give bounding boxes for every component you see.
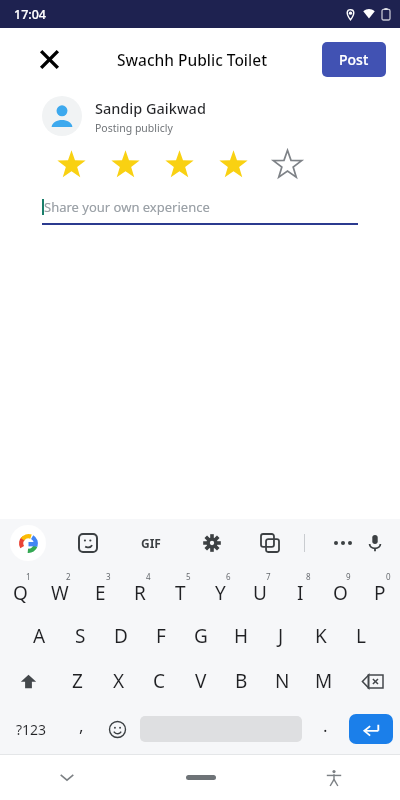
button[interactable]: X — [98, 658, 139, 704]
button[interactable]: Stickers — [72, 527, 104, 559]
button[interactable]: Translate — [254, 527, 286, 559]
staticText: G — [194, 623, 208, 649]
button[interactable]: Period — [308, 704, 342, 754]
button[interactable]: Google — [10, 525, 46, 561]
button[interactable]: Hide keyboard — [0, 755, 134, 800]
button[interactable]: Settings — [196, 527, 228, 559]
staticText: 0 — [386, 571, 391, 582]
button[interactable]: 6 — [200, 566, 240, 614]
button[interactable]: 5 — [160, 566, 200, 614]
button[interactable]: Shift — [0, 658, 57, 704]
staticText: Posting publicly — [95, 121, 173, 135]
staticText: , — [79, 714, 84, 737]
staticText: 3 — [106, 571, 111, 582]
staticText: Share your own experience — [44, 198, 210, 216]
staticText: O — [333, 580, 348, 606]
button[interactable]: 9 — [320, 566, 360, 614]
staticText: 4 — [146, 571, 151, 582]
button[interactable]: Emoji — [100, 704, 134, 754]
staticText: 8 — [306, 571, 311, 582]
button[interactable]: 7 — [240, 566, 280, 614]
staticText: F — [156, 623, 166, 649]
staticText: U — [253, 580, 267, 606]
button[interactable]: Home — [134, 755, 267, 800]
button[interactable]: Post — [322, 42, 386, 77]
button[interactable]: B — [221, 658, 262, 704]
staticText: R — [134, 580, 146, 606]
staticText: W — [51, 580, 69, 606]
staticText: Post — [339, 50, 369, 69]
button[interactable]: Rate 1 stars — [44, 146, 98, 184]
staticText: H — [234, 623, 249, 649]
staticText: A — [33, 623, 46, 649]
staticText: 6 — [226, 571, 231, 582]
staticText: 2 — [66, 571, 71, 582]
button[interactable]: ?123 — [0, 704, 62, 754]
staticText: X — [113, 668, 125, 694]
button[interactable]: C — [139, 658, 180, 704]
button[interactable]: M — [303, 658, 344, 704]
staticText: ?123 — [16, 720, 47, 739]
button[interactable]: GIF — [132, 524, 170, 562]
button[interactable]: Z — [57, 658, 98, 704]
staticText: K — [315, 623, 327, 649]
button[interactable]: 2 — [40, 566, 80, 614]
button[interactable]: N — [262, 658, 303, 704]
button[interactable]: 8 — [280, 566, 320, 614]
button[interactable]: K — [301, 614, 341, 658]
staticText: . — [323, 714, 328, 737]
staticText: Y — [215, 580, 226, 606]
staticText: D — [114, 623, 128, 649]
button[interactable]: 0 — [360, 566, 400, 614]
button[interactable]: L — [341, 614, 381, 658]
button[interactable]: H — [221, 614, 261, 658]
button[interactable]: Comma — [62, 704, 100, 754]
button[interactable]: More options — [327, 527, 359, 559]
button[interactable]: Voice input — [359, 526, 390, 560]
button[interactable]: 3 — [80, 566, 120, 614]
staticText: Swachh Public Toilet — [117, 49, 268, 70]
staticText: N — [275, 668, 290, 694]
staticText: GIF — [141, 535, 161, 551]
button[interactable]: F — [141, 614, 181, 658]
button[interactable]: 1 — [0, 566, 40, 614]
staticText: 7 — [266, 571, 271, 582]
staticText: J — [278, 623, 284, 649]
button[interactable]: Rate 4 stars — [206, 146, 260, 184]
button[interactable]: G — [181, 614, 221, 658]
staticText: Sandip Gaikwad — [95, 98, 206, 118]
button[interactable]: J — [261, 614, 301, 658]
staticText: M — [315, 668, 333, 694]
button[interactable]: Close — [32, 42, 66, 76]
staticText: C — [153, 668, 166, 694]
button[interactable]: Rate 5 stars — [260, 146, 314, 184]
staticText: B — [235, 668, 248, 694]
staticText: Z — [72, 668, 83, 694]
staticText: I — [297, 580, 304, 606]
button[interactable]: Space — [134, 704, 308, 754]
staticText: 9 — [346, 571, 351, 582]
button[interactable]: Rate 2 stars — [98, 146, 152, 184]
staticText: Q — [13, 580, 28, 606]
button[interactable]: Backspace — [344, 658, 400, 704]
staticText: P — [374, 580, 386, 606]
staticText: 5 — [186, 571, 191, 582]
button[interactable]: Accessibility — [267, 755, 400, 800]
staticText: 1 — [26, 571, 31, 582]
button[interactable]: V — [180, 658, 221, 704]
staticText: L — [356, 623, 366, 649]
button[interactable]: A — [19, 614, 60, 658]
staticText: V — [195, 668, 207, 694]
button[interactable]: 4 — [120, 566, 160, 614]
staticText: S — [75, 623, 86, 649]
staticText: 17:04 — [14, 6, 47, 23]
button[interactable]: Rate 3 stars — [152, 146, 206, 184]
button[interactable]: Enter — [342, 704, 400, 754]
staticText: E — [95, 580, 106, 606]
button[interactable]: S — [60, 614, 101, 658]
button[interactable]: D — [101, 614, 141, 658]
staticText: T — [175, 580, 186, 606]
